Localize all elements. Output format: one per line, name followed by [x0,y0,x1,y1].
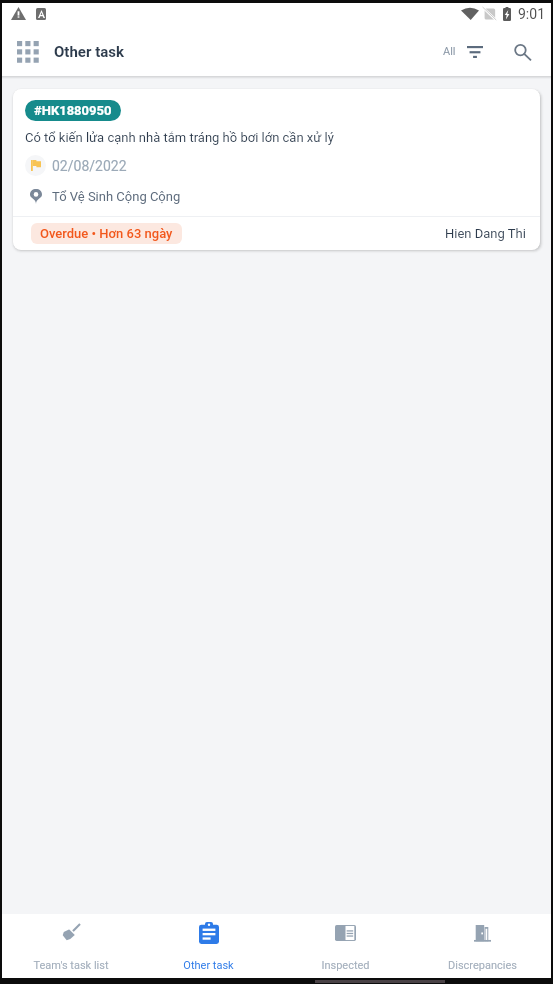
button[interactable]: Inspected [277,914,414,978]
other: Apps menu [8,34,44,70]
staticText: Tổ Vệ Sinh Cộng Cộng [52,189,181,204]
staticText: 9:01 [518,6,545,22]
staticText: #HK1880950 [34,103,112,118]
button[interactable]: All [436,35,490,68]
staticText: 02/08/2022 [52,158,127,174]
staticText: Other task [54,43,124,61]
staticText: Other task [183,959,234,972]
staticText: Discrepancies [448,959,517,972]
staticText: Inspected [321,959,370,972]
staticText: Overdue • Hơn 63 ngày [40,226,173,241]
button[interactable]: Team's task list [2,914,140,978]
staticText: All [443,45,456,58]
button[interactable]: Other task [140,914,277,978]
staticText: Có tổ kiến lửa cạnh nhà tắm tráng hồ bơi… [25,130,334,145]
button[interactable]: Search [505,34,541,70]
staticText: Team's task list [33,959,109,972]
button[interactable]: Discrepancies [414,914,551,978]
button[interactable]: #HK1880950 [13,89,540,250]
staticText: Hien Dang Thi [445,226,526,241]
button[interactable]: Apps menu [2,27,124,76]
